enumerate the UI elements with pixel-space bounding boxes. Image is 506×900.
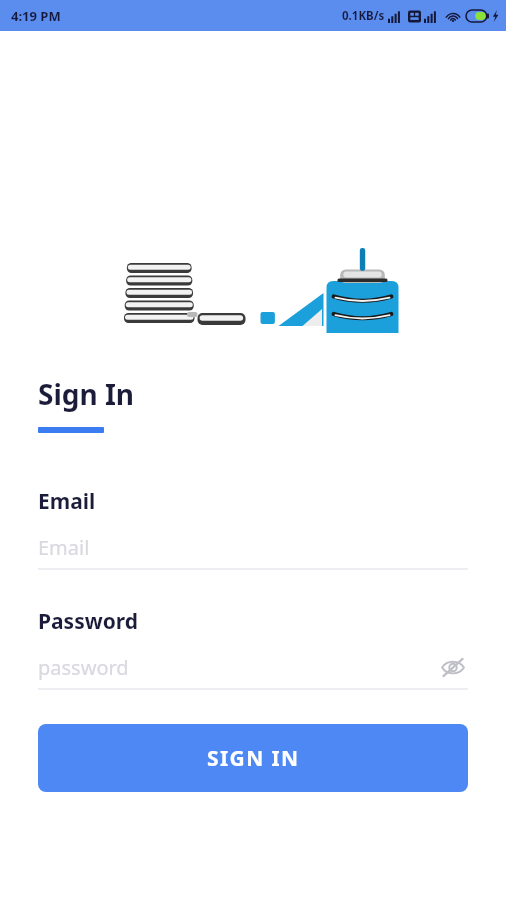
staticText: 4:19 PM xyxy=(11,7,61,25)
staticText: Password xyxy=(38,607,139,636)
button[interactable]: password xyxy=(38,654,438,681)
button[interactable]: Show password xyxy=(438,652,468,682)
staticText: 0.1KB/s xyxy=(342,8,385,24)
staticText: Sign In xyxy=(38,375,135,413)
staticText: SIGN IN xyxy=(207,744,300,773)
button[interactable]: SIGN IN xyxy=(38,724,468,792)
staticText: password xyxy=(38,654,129,681)
button[interactable]: Email xyxy=(38,530,468,564)
staticText: Email xyxy=(38,534,90,561)
staticText: Email xyxy=(38,487,96,516)
